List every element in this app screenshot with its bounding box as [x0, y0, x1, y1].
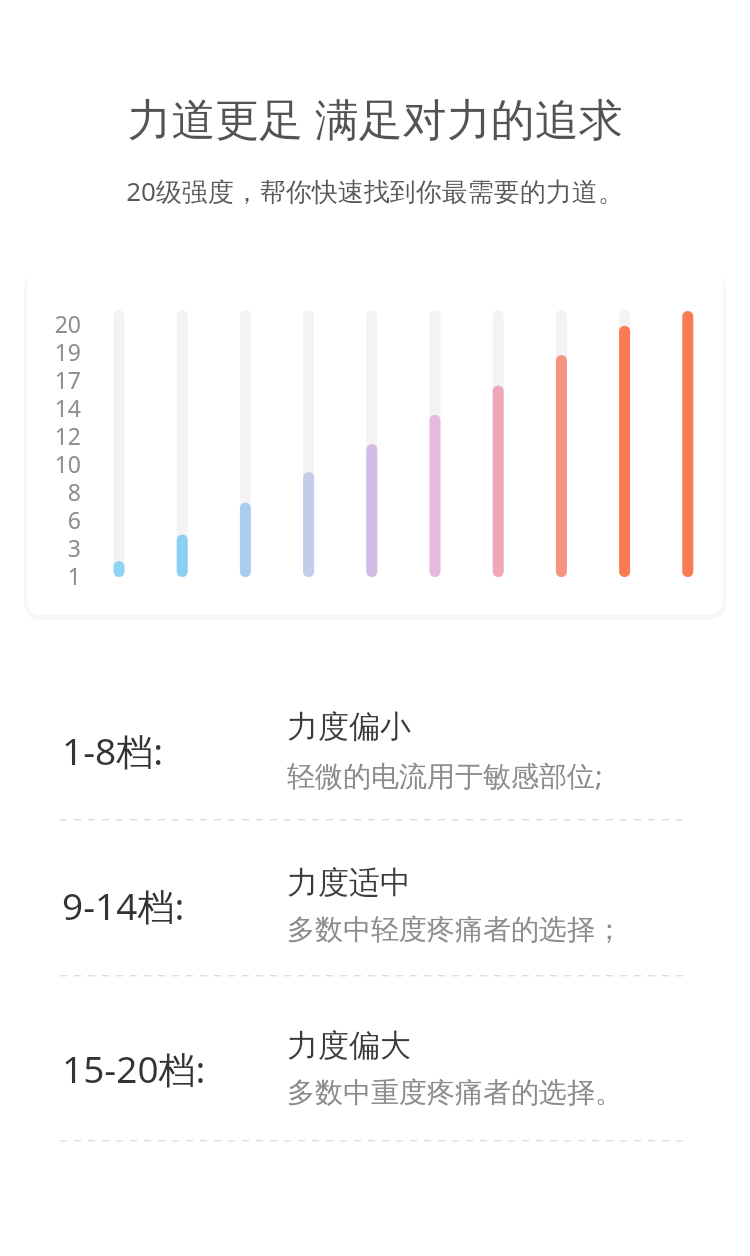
staticText: 12 — [35, 420, 81, 451]
staticText: 19 — [35, 336, 81, 367]
staticText: 10 — [35, 448, 81, 479]
staticText: 8 — [35, 476, 81, 507]
staticText: 力度偏小 — [287, 707, 411, 746]
staticText: 力度偏大 — [287, 1026, 411, 1065]
staticText: 20 — [35, 308, 81, 339]
staticText: 力度适中 — [287, 863, 411, 902]
staticText: 20级强度，帮你快速找到你最需要的力道。 — [0, 173, 750, 209]
button[interactable]: 20 — [27, 271, 723, 615]
staticText: 15-20档: — [62, 1043, 206, 1094]
staticText: 轻微的电流用于敏感部位; — [287, 756, 603, 794]
button[interactable]: 1-8档: — [0, 700, 750, 800]
staticText: 1-8档: — [62, 725, 164, 776]
staticText: 1 — [35, 560, 81, 591]
staticText: 6 — [35, 504, 81, 535]
staticText: 多数中轻度疼痛者的选择； — [287, 912, 623, 947]
staticText: 14 — [35, 392, 81, 423]
staticText: 力道更足 满足对力的追求 — [0, 88, 750, 148]
staticText: 多数中重度疼痛者的选择。 — [287, 1075, 623, 1110]
staticText: 3 — [35, 532, 81, 563]
staticText: 17 — [35, 364, 81, 395]
button[interactable]: 15-20档: — [0, 1018, 750, 1118]
staticText: 9-14档: — [62, 880, 185, 931]
button[interactable]: 9-14档: — [0, 855, 750, 955]
